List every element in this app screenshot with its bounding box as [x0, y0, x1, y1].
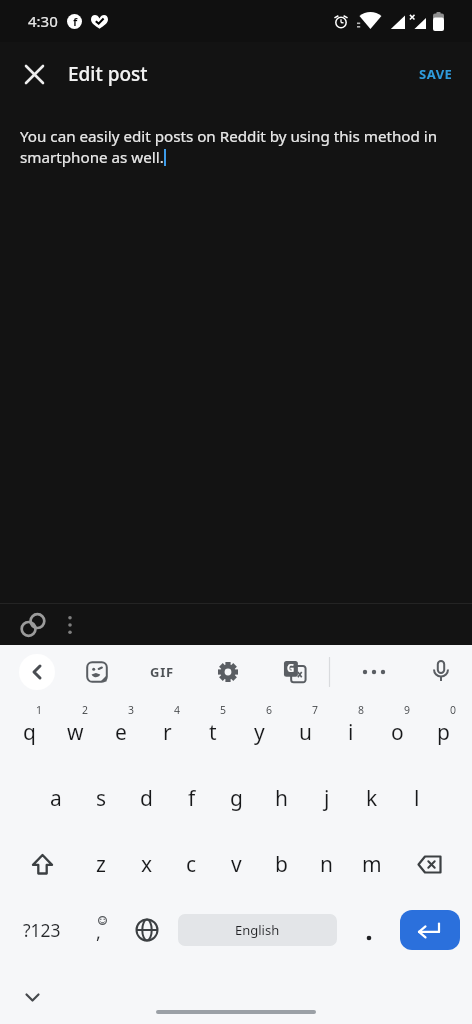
button[interactable]: ,: [76, 897, 124, 963]
button[interactable]: q: [6, 699, 52, 765]
staticText: 7: [312, 703, 319, 717]
staticText: k: [366, 784, 378, 813]
staticText: y: [254, 718, 265, 747]
button[interactable]: r: [144, 699, 190, 765]
button[interactable]: c: [169, 831, 214, 897]
staticText: h: [275, 784, 288, 813]
button[interactable]: j: [304, 765, 349, 831]
staticText: 2: [82, 703, 89, 717]
button[interactable]: v: [214, 831, 259, 897]
button[interactable]: b: [259, 831, 304, 897]
button[interactable]: [393, 897, 472, 963]
button[interactable]: a: [33, 765, 79, 831]
button[interactable]: m: [349, 831, 394, 897]
button[interactable]: G: [275, 652, 315, 692]
staticText: 9: [404, 703, 411, 717]
staticText: GIF: [150, 663, 175, 681]
staticText: u: [299, 718, 312, 747]
button[interactable]: f: [169, 765, 214, 831]
staticText: f: [73, 14, 78, 29]
button[interactable]: [421, 652, 461, 692]
button[interactable]: l: [394, 765, 439, 831]
button[interactable]: k: [349, 765, 394, 831]
button[interactable]: ?123: [0, 897, 76, 963]
button[interactable]: GIF: [142, 652, 182, 692]
staticText: q: [23, 718, 36, 747]
staticText: n: [320, 850, 333, 879]
button[interactable]: [18, 610, 48, 640]
staticText: j: [324, 784, 330, 813]
staticText: v: [231, 850, 242, 879]
staticText: r: [163, 718, 172, 747]
staticText: Edit post: [68, 61, 148, 87]
staticText: 4: [174, 703, 181, 717]
staticText: o: [391, 718, 404, 747]
button[interactable]: p: [420, 699, 466, 765]
button[interactable]: [354, 652, 394, 692]
staticText: t: [209, 718, 217, 747]
staticText: p: [437, 718, 450, 747]
button[interactable]: [0, 831, 78, 897]
staticText: i: [348, 718, 354, 747]
staticText: You can easily edit posts on Reddit by u…: [20, 126, 438, 147]
staticText: SAVE: [419, 65, 453, 83]
button[interactable]: SAVE: [419, 65, 453, 83]
staticText: g: [230, 784, 243, 813]
button[interactable]: [56, 611, 84, 639]
staticText: f: [188, 784, 196, 813]
staticText: G: [287, 661, 295, 675]
button[interactable]: [19, 654, 55, 690]
staticText: d: [140, 784, 153, 813]
button[interactable]: o: [374, 699, 420, 765]
button[interactable]: x: [124, 831, 169, 897]
staticText: l: [414, 784, 420, 813]
button[interactable]: [124, 897, 170, 963]
button[interactable]: h: [259, 765, 304, 831]
staticText: x: [141, 850, 153, 879]
staticText: 3: [128, 703, 135, 717]
staticText: b: [275, 850, 288, 879]
staticText: a: [50, 784, 62, 813]
button[interactable]: g: [214, 765, 259, 831]
button[interactable]: t: [190, 699, 236, 765]
button[interactable]: e: [98, 699, 144, 765]
button[interactable]: w: [52, 699, 98, 765]
button[interactable]: [208, 652, 248, 692]
staticText: e: [115, 718, 127, 747]
button[interactable]: [394, 831, 472, 897]
button[interactable]: u: [282, 699, 328, 765]
staticText: 6: [266, 703, 273, 717]
staticText: 1: [36, 703, 43, 717]
button[interactable]: [77, 652, 117, 692]
staticText: s: [96, 784, 107, 813]
button[interactable]: [16, 56, 52, 92]
staticText: z: [96, 850, 106, 879]
staticText: 5: [220, 703, 227, 717]
button[interactable]: [345, 897, 393, 963]
staticText: smartphone as well.: [20, 147, 164, 168]
staticText: 4:30: [28, 11, 58, 31]
staticText: 0: [450, 703, 457, 717]
staticText: 8: [358, 703, 365, 717]
button[interactable]: s: [79, 765, 124, 831]
button[interactable]: English: [178, 897, 337, 963]
button[interactable]: [16, 981, 48, 1013]
button[interactable]: z: [78, 831, 124, 897]
button[interactable]: y: [236, 699, 282, 765]
staticText: m: [362, 850, 382, 879]
button[interactable]: n: [304, 831, 349, 897]
staticText: English: [235, 921, 280, 939]
staticText: ,: [96, 920, 101, 944]
staticText: w: [67, 718, 84, 747]
staticText: ?123: [23, 918, 61, 942]
button[interactable]: d: [124, 765, 169, 831]
button[interactable]: i: [328, 699, 374, 765]
staticText: c: [186, 850, 197, 879]
